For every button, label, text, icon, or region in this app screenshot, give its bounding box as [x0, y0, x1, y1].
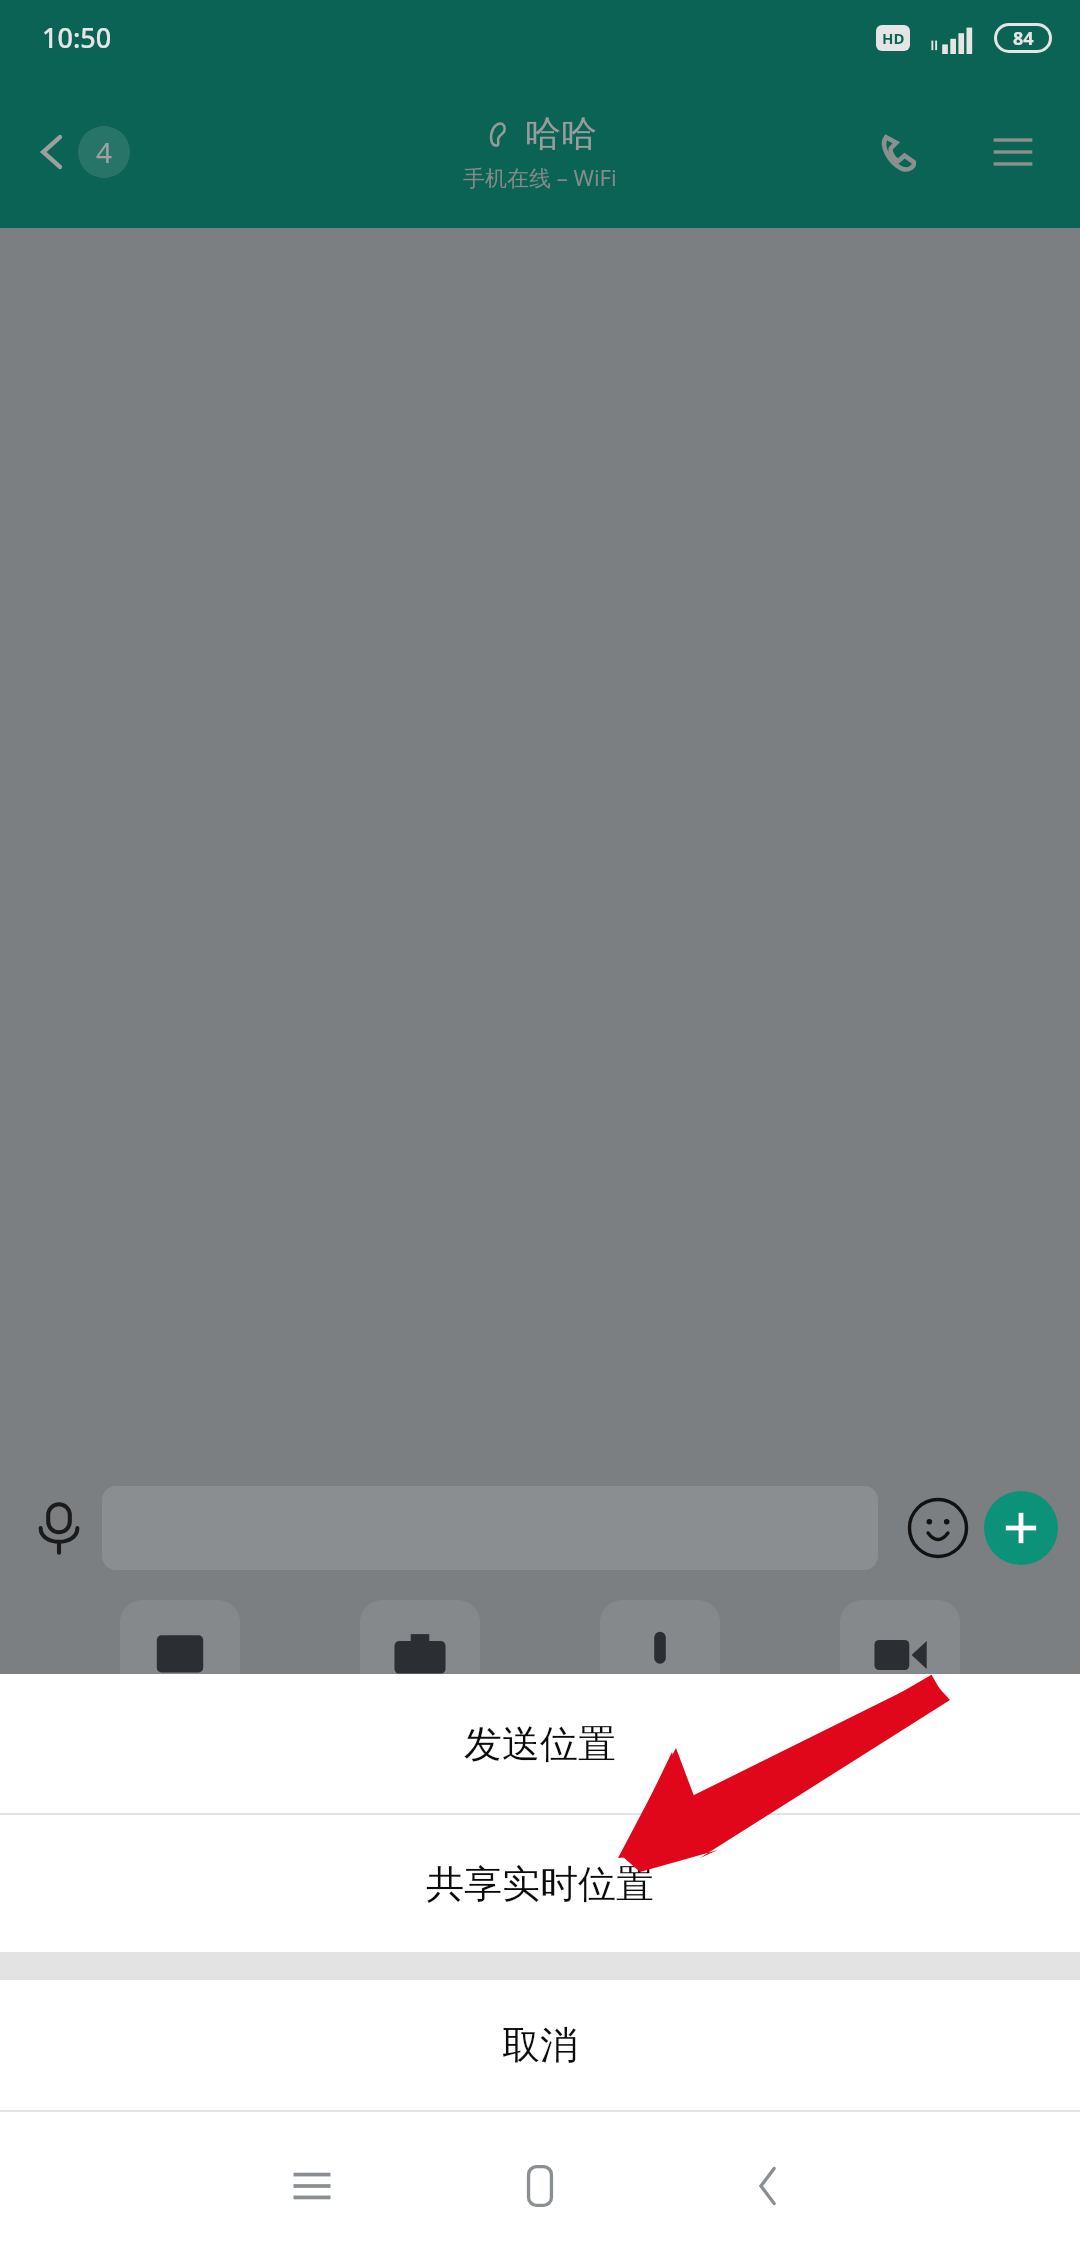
button[interactable]: Attachment 1	[360, 1600, 480, 1710]
button[interactable]: Emoji	[900, 1490, 976, 1566]
button[interactable]: Attachment 0	[120, 1600, 240, 1710]
staticText: 4	[96, 133, 113, 171]
button[interactable]: Back	[720, 2138, 816, 2234]
button[interactable]: Attachment 3	[840, 1600, 960, 1710]
button[interactable]: 取消	[0, 1980, 1080, 2110]
button[interactable]: Menu	[980, 119, 1046, 185]
button[interactable]: Back	[22, 118, 138, 186]
staticText: 发送位置	[464, 1720, 616, 1768]
staticText: 10:50	[42, 19, 112, 56]
button[interactable]: 发送位置	[0, 1674, 1080, 1813]
staticText: 手机在线 – WiFi	[463, 162, 617, 192]
button[interactable]: Recents	[264, 2138, 360, 2234]
button[interactable]: Attachment 2	[600, 1600, 720, 1710]
staticText: HD	[882, 28, 905, 48]
button[interactable]: Add attachment	[984, 1491, 1058, 1565]
staticText: 取消	[502, 2021, 578, 2069]
staticText: 共享实时位置	[426, 1860, 654, 1908]
button[interactable]: Home	[492, 2138, 588, 2234]
button[interactable]: 共享实时位置	[0, 1815, 1080, 1952]
staticText: 哈哈	[525, 111, 597, 156]
staticText: 84	[1013, 26, 1034, 50]
button[interactable]: Voice message	[22, 1491, 96, 1565]
button[interactable]: Call	[866, 119, 932, 185]
